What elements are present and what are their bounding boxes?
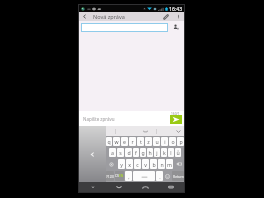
staticText: f — [135, 149, 137, 156]
staticText: r — [131, 138, 134, 145]
button[interactable]: . — [156, 171, 163, 181]
button[interactable]: o — [169, 137, 176, 146]
staticText: j — [156, 149, 158, 156]
button[interactable]: w — [113, 137, 120, 146]
button[interactable]: Recents — [158, 182, 184, 192]
staticText: , — [128, 173, 130, 180]
staticText: 160/1 — [171, 112, 180, 116]
staticText: d — [127, 149, 131, 156]
button[interactable]: h — [147, 148, 153, 157]
button[interactable]: n — [158, 159, 165, 169]
button[interactable]: a — [109, 148, 116, 157]
staticText: e — [123, 138, 126, 145]
button[interactable]: More options — [172, 12, 184, 21]
button[interactable]: ?123 — [106, 171, 114, 181]
button[interactable]: z — [145, 137, 152, 146]
button[interactable]: t — [137, 137, 144, 146]
button[interactable]: ů — [175, 148, 181, 157]
staticText: c — [136, 161, 139, 168]
button[interactable]: u — [153, 137, 160, 146]
button[interactable] — [133, 171, 155, 181]
button[interactable]: Back — [79, 12, 90, 21]
staticText: g — [141, 149, 145, 156]
button[interactable]: Back — [106, 182, 132, 192]
button[interactable]: b — [150, 159, 157, 169]
staticText: t — [140, 138, 142, 145]
button[interactable]: l — [168, 148, 174, 157]
button[interactable]: Emoji — [164, 171, 171, 181]
staticText: i — [164, 138, 166, 145]
staticText: z — [147, 138, 150, 145]
button[interactable]: x — [126, 159, 133, 169]
staticText: ů — [176, 149, 180, 156]
staticText: p — [179, 138, 183, 145]
button[interactable]: Hide keyboard — [79, 182, 106, 192]
button[interactable]: j — [154, 148, 160, 157]
staticText: x — [128, 161, 131, 168]
staticText: 16:43 — [169, 5, 183, 12]
staticText: n — [160, 161, 164, 168]
button[interactable]: Shift — [106, 159, 117, 169]
button[interactable]: Expand keyboard — [79, 126, 106, 182]
staticText: l — [170, 149, 172, 156]
staticText: k — [163, 149, 166, 156]
staticText: q — [107, 138, 111, 145]
button[interactable] — [81, 23, 168, 32]
button[interactable]: , — [125, 171, 132, 181]
button[interactable]: Return — [172, 171, 184, 181]
staticText: v — [144, 161, 147, 168]
button[interactable]: d — [125, 148, 132, 157]
button[interactable]: c — [134, 159, 141, 169]
button[interactable]: Change language — [115, 171, 124, 181]
button[interactable]: k — [161, 148, 167, 157]
button[interactable]: Backspace — [174, 159, 184, 169]
button[interactable]: s — [117, 148, 124, 157]
staticText: b — [152, 161, 156, 168]
button[interactable]: Send — [170, 115, 182, 124]
staticText: Nová zpráva — [93, 13, 125, 20]
staticText: a — [111, 149, 114, 156]
button[interactable]: Attach — [160, 12, 172, 21]
button[interactable]: g — [140, 148, 146, 157]
button[interactable]: m — [166, 159, 173, 169]
staticText: h — [148, 149, 152, 156]
staticText: m — [167, 161, 172, 168]
staticText: s — [119, 149, 122, 156]
button[interactable]: y — [118, 159, 125, 169]
button[interactable]: Home — [132, 182, 158, 192]
button[interactable]: f — [133, 148, 139, 157]
staticText: Return — [173, 174, 184, 179]
staticText: CS — [115, 174, 119, 178]
button[interactable]: q — [106, 137, 112, 146]
staticText: . — [159, 173, 161, 180]
button[interactable]: e — [121, 137, 128, 146]
button[interactable]: Add recipient — [168, 21, 184, 33]
staticText: y — [120, 161, 123, 168]
button[interactable]: p — [177, 137, 184, 146]
button[interactable]: r — [129, 137, 136, 146]
staticText: o — [171, 138, 175, 145]
staticText: Napište zprávu — [83, 116, 115, 122]
button[interactable]: i — [161, 137, 168, 146]
button[interactable]: v — [142, 159, 149, 169]
staticText: w — [114, 138, 119, 145]
staticText: EN — [119, 174, 124, 178]
staticText: u — [155, 138, 159, 145]
staticText: ?123 — [106, 174, 114, 179]
